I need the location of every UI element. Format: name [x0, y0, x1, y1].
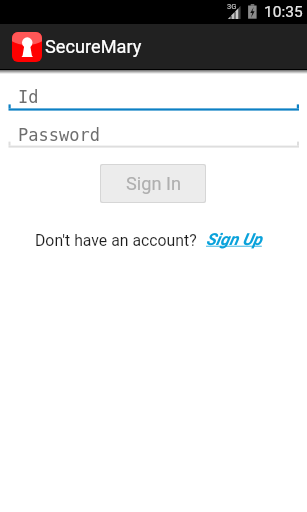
- staticText: 3G: [227, 2, 237, 11]
- staticText: Id: [18, 87, 39, 107]
- staticText: Sign In: [126, 173, 181, 194]
- staticText: 10:35: [264, 3, 303, 21]
- staticText: Password: [18, 125, 100, 145]
- staticText: SecureMary: [45, 36, 142, 57]
- staticText: Sign Up: [206, 230, 262, 249]
- staticText: Don't have an account?: [35, 231, 197, 250]
- button[interactable]: Sign Up: [206, 230, 262, 249]
- button[interactable]: Sign In: [101, 165, 205, 202]
